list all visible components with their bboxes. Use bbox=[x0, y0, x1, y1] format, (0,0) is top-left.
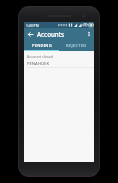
staticText: Accounts bbox=[37, 30, 65, 38]
button[interactable]: Navigate up bbox=[24, 28, 37, 40]
staticText: REJECTED bbox=[66, 43, 87, 48]
staticText: 1:43 PM bbox=[26, 23, 39, 28]
button[interactable]: PENAHOEK bbox=[24, 60, 94, 67]
staticText: PENAHOEK bbox=[27, 61, 50, 67]
staticText: Account closed bbox=[27, 54, 54, 59]
staticText: PENDING bbox=[32, 43, 52, 48]
button[interactable]: REJECTED bbox=[59, 40, 94, 50]
button[interactable]: More options bbox=[84, 28, 94, 40]
button[interactable]: PENDING bbox=[24, 40, 59, 50]
